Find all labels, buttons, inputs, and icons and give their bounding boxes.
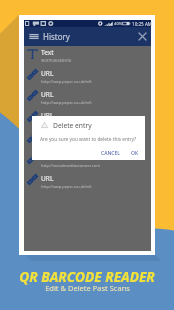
staticText: CANCEL	[101, 150, 120, 157]
staticText: 10:25 AM	[132, 21, 153, 27]
button[interactable]: Text	[24, 46, 151, 67]
staticText: 9697536550016	[41, 58, 72, 64]
staticText: http://wap.pepsi.co.uk/m5	[41, 79, 92, 85]
staticText: Edit & Delete Past Scans	[45, 283, 130, 293]
staticText: OK	[131, 150, 139, 157]
button[interactable]: CANCEL	[98, 148, 123, 159]
staticText: http://wap.pepsi.co.uk/m5	[41, 121, 92, 127]
staticText: URL	[41, 90, 54, 99]
staticText: URL	[41, 111, 54, 120]
button[interactable]: Close	[134, 27, 150, 46]
button[interactable]: URL	[24, 109, 151, 130]
staticText: URL	[41, 153, 54, 162]
staticText: Delete entry	[53, 121, 92, 130]
button[interactable]: OK	[128, 148, 142, 159]
staticText: http://wap.pepsi.co.uk/m5	[41, 100, 92, 106]
staticText: QR BARCODE READER	[19, 267, 155, 286]
staticText: URL	[41, 132, 54, 141]
staticText: URL	[41, 174, 54, 183]
button[interactable]: Menu	[24, 27, 43, 46]
staticText: http://wap.pepsi.co.uk/m5	[41, 184, 92, 190]
staticText: http://socialmediascanner.com	[41, 163, 100, 169]
staticText: 40%	[114, 21, 123, 27]
button[interactable]: URL	[24, 88, 151, 109]
button[interactable]: URL	[24, 172, 151, 193]
button[interactable]: URL	[24, 151, 151, 172]
staticText: URL	[41, 69, 54, 78]
staticText: History	[43, 31, 70, 42]
button[interactable]: URL	[24, 67, 151, 88]
staticText: Are you sure you want to delete this ent…	[40, 136, 137, 143]
staticText: Text	[41, 48, 54, 57]
button[interactable]: URL	[24, 130, 151, 151]
